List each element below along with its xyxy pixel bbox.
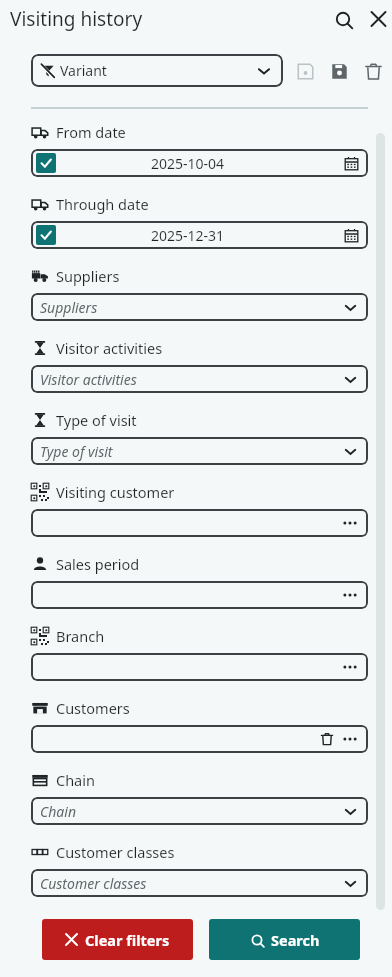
staticText: Sales period — [56, 554, 140, 574]
button[interactable]: Clear — [317, 729, 337, 749]
staticText: Visitor activities — [40, 370, 137, 389]
staticText: Branch — [56, 626, 105, 646]
staticText: Suppliers — [56, 266, 120, 286]
button[interactable]: More options — [31, 653, 368, 681]
staticText: Customer classes — [40, 874, 147, 893]
staticText: Search — [271, 930, 320, 950]
button[interactable]: More options — [340, 513, 360, 533]
button[interactable]: More options — [31, 581, 368, 609]
staticText: Chain — [56, 770, 95, 790]
staticText: Customers — [56, 698, 130, 718]
button[interactable]: Type of visit — [31, 437, 368, 465]
staticText: Type of visit — [56, 410, 137, 430]
staticText: 2025-10-04 — [151, 154, 225, 173]
button[interactable]: 2025-10-04 — [31, 149, 368, 177]
button[interactable]: More options — [340, 657, 360, 677]
button[interactable]: Variant — [31, 54, 283, 87]
button[interactable]: Search — [209, 919, 360, 960]
button[interactable]: Close — [365, 5, 392, 33]
staticText: Visiting history — [10, 6, 143, 32]
staticText: Visiting customer — [56, 482, 175, 502]
button[interactable]: Clear — [31, 725, 368, 753]
button[interactable]: 2025-12-31 — [31, 221, 368, 249]
button[interactable]: Save variant — [326, 58, 352, 84]
button[interactable]: Chain — [31, 797, 368, 825]
button[interactable]: Visitor activities — [31, 365, 368, 393]
staticText: Type of visit — [40, 442, 113, 461]
staticText: From date — [56, 122, 126, 142]
button[interactable]: More options — [340, 585, 360, 605]
staticText: Through date — [56, 194, 149, 214]
button[interactable]: Clear filters — [42, 919, 193, 960]
staticText: Visitor activities — [56, 338, 163, 358]
staticText: Suppliers — [40, 298, 98, 317]
button[interactable]: More options — [31, 509, 368, 537]
staticText: Clear filters — [85, 930, 170, 950]
button[interactable]: More options — [340, 729, 360, 749]
staticText: Variant — [60, 61, 107, 80]
button[interactable]: Search — [329, 5, 357, 33]
staticText: 2025-12-31 — [151, 226, 225, 245]
button[interactable]: Delete variant — [360, 58, 386, 84]
staticText: Customer classes — [56, 842, 175, 862]
staticText: Chain — [40, 802, 76, 821]
button[interactable]: Suppliers — [31, 293, 368, 321]
button[interactable]: Save variant as — [292, 58, 318, 84]
button[interactable]: Customer classes — [31, 869, 368, 897]
